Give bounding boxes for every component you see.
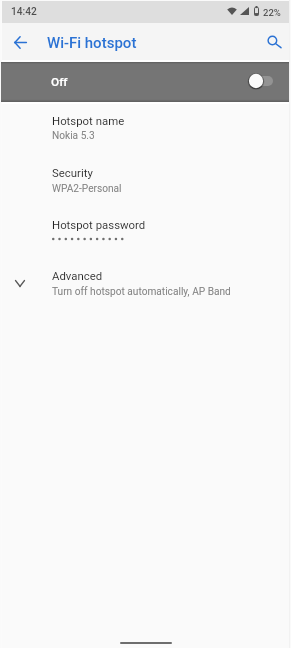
staticText: 22% [263, 7, 281, 18]
button[interactable] [0, 262, 291, 308]
staticText: Hotspot name [52, 114, 125, 127]
staticText: 14:42 [11, 6, 37, 18]
button[interactable]: Back [6, 28, 34, 56]
staticText: Turn off hotspot automatically, AP Band [52, 286, 231, 298]
button[interactable] [0, 159, 291, 205]
button[interactable]: Search [258, 28, 287, 57]
button[interactable] [0, 211, 291, 257]
staticText: Security [52, 166, 93, 179]
staticText: WPA2-Personal [52, 183, 122, 195]
button[interactable] [0, 107, 291, 153]
staticText: Hotspot password [52, 218, 146, 231]
button[interactable]: Hotspot toggle [1, 62, 289, 102]
staticText: Advanced [52, 269, 103, 282]
staticText: Nokia 5.3 [52, 130, 95, 142]
staticText: Wi-Fi hotspot [47, 34, 137, 52]
staticText: Off [51, 75, 68, 89]
